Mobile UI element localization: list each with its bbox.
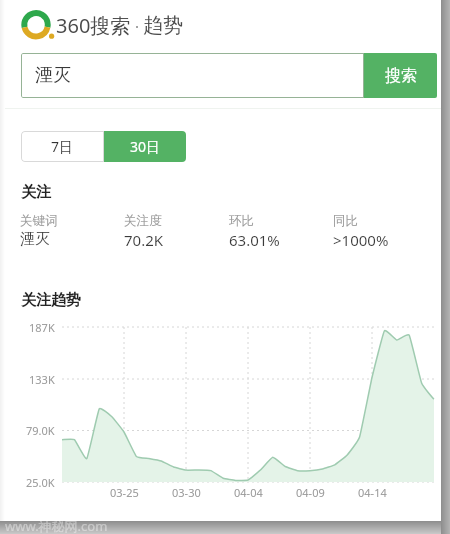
staticText: >1000% [333, 230, 389, 250]
staticText: 187K [29, 320, 55, 335]
button[interactable]: 30日 [104, 131, 186, 162]
staticText: 04-09 [296, 485, 325, 500]
staticText: 360搜索 [56, 12, 131, 39]
staticText: 133K [29, 372, 55, 387]
staticText: 搜索 [385, 66, 417, 86]
staticText: www.神秘网.com [5, 517, 108, 534]
staticText: 关注 [21, 183, 51, 202]
other: 360 logo [0, 0, 450, 534]
staticText: 湮灭 [35, 64, 71, 87]
staticText: · [131, 16, 143, 36]
staticText: 环比 [229, 213, 255, 229]
staticText: 70.2K [124, 230, 164, 250]
staticText: 04-04 [234, 485, 263, 500]
staticText: 同比 [333, 213, 359, 229]
staticText: 25.0K [26, 475, 55, 490]
button[interactable]: 湮灭 [21, 53, 364, 98]
staticText: 03-25 [110, 485, 139, 500]
staticText: 关键词 [20, 213, 58, 229]
staticText: 湮灭 [20, 230, 50, 249]
button[interactable]: 搜索 [364, 53, 437, 98]
staticText: 关注度 [124, 213, 162, 229]
staticText: 7日 [51, 137, 74, 156]
staticText: 79.0K [26, 423, 55, 438]
staticText: 趋势 [143, 13, 183, 38]
staticText: 63.01% [229, 230, 280, 250]
staticText: 04-14 [358, 485, 387, 500]
button[interactable]: 7日 [21, 131, 104, 162]
staticText: 30日 [130, 137, 161, 156]
staticText: 关注趋势 [21, 291, 81, 310]
staticText: 03-30 [172, 485, 201, 500]
